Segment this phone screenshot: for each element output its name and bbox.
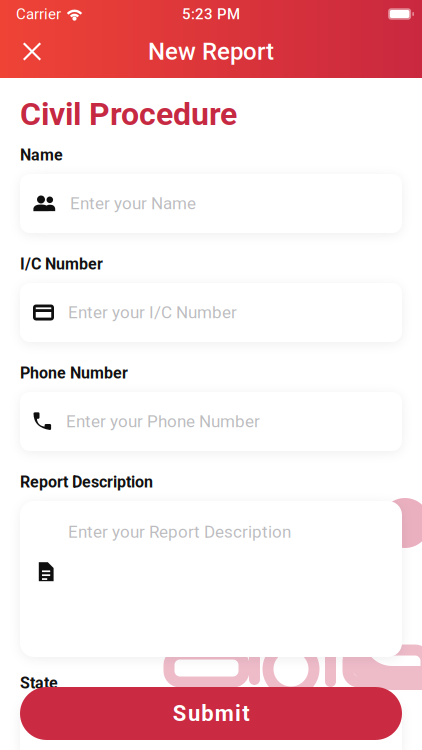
staticText: 5:23 PM: [182, 5, 240, 23]
staticText: Enter your Phone Number: [66, 411, 260, 431]
staticText: New Report: [148, 37, 274, 65]
staticText: Enter your Report Description: [68, 522, 291, 542]
staticText: I/C Number: [20, 255, 103, 273]
staticText: Phone Number: [20, 364, 128, 382]
staticText: State: [20, 674, 58, 692]
staticText: Report Description: [20, 473, 153, 491]
staticText: Civil Procedure: [20, 95, 237, 133]
staticText: Name: [20, 146, 63, 164]
staticText: Enter your I/C Number: [68, 302, 237, 322]
button[interactable]: Submit: [20, 687, 402, 740]
staticText: Enter your Name: [70, 193, 196, 213]
staticText: Carrier: [16, 5, 61, 23]
button[interactable]: Close: [10, 29, 54, 73]
staticText: Select your State: [58, 720, 186, 740]
staticText: Submit: [173, 701, 249, 726]
